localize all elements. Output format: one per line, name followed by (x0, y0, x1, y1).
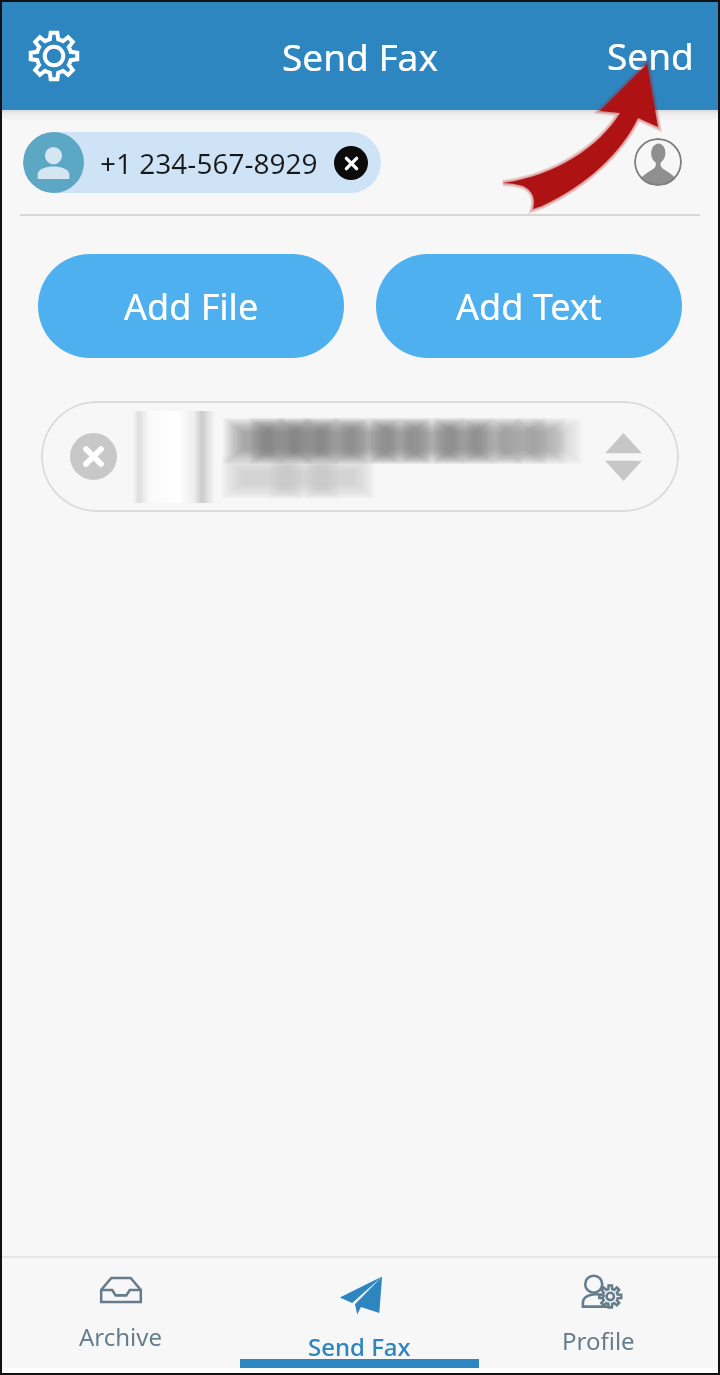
button[interactable]: Remove recipient (334, 146, 368, 180)
staticText: Archive (79, 1320, 163, 1353)
staticText: Profile (562, 1324, 635, 1357)
button[interactable]: Archive (2, 1258, 240, 1368)
staticText: Add File (124, 282, 259, 331)
button[interactable]: +1 234-567-8929 (23, 132, 381, 193)
button[interactable]: Remove attachment (41, 401, 679, 512)
staticText: Send Fax (282, 31, 438, 81)
button[interactable]: Remove attachment (70, 433, 117, 480)
button[interactable]: Contacts (634, 138, 682, 186)
button[interactable]: Settings (26, 28, 82, 84)
button[interactable]: Reorder attachment (605, 433, 642, 481)
button[interactable]: Add Text (376, 254, 682, 358)
staticText: Send (607, 30, 694, 80)
staticText: Add Text (456, 282, 602, 331)
staticText: Send Fax (308, 1330, 411, 1363)
button[interactable]: Send (601, 26, 700, 84)
button[interactable]: Profile (479, 1258, 718, 1368)
button[interactable]: Add File (38, 254, 344, 358)
staticText: +1 234-567-8929 (100, 144, 318, 182)
button[interactable]: Send Fax (240, 1258, 479, 1368)
